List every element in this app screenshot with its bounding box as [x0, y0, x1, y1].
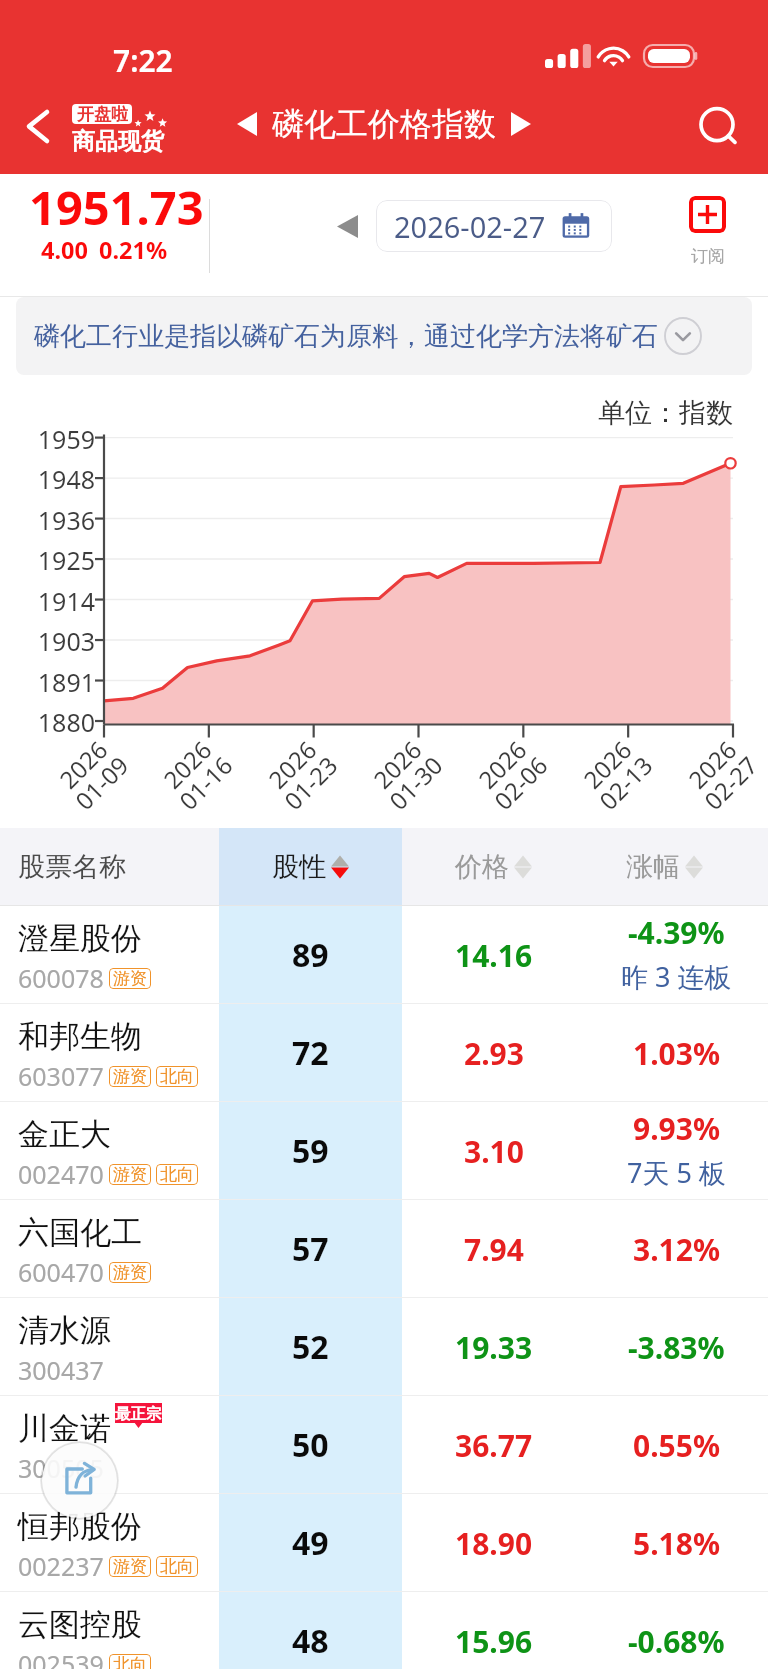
staticText: 北向 — [160, 1066, 194, 1087]
button[interactable]: 恒邦股份 — [0, 1494, 768, 1592]
staticText: 涨幅 — [626, 850, 680, 884]
staticText: 5.18% — [633, 1523, 720, 1564]
staticText: 川金诺 — [18, 1409, 111, 1448]
staticText: 单位：指数 — [598, 396, 733, 430]
staticText: 18.90 — [455, 1523, 533, 1564]
staticText: 订阅 — [691, 246, 725, 267]
button[interactable]: 川金诺 — [0, 1396, 768, 1494]
staticText: 2026 01-09 — [49, 730, 135, 817]
staticText: 2026-02-27 — [394, 207, 546, 246]
button[interactable]: 金正大 — [0, 1102, 768, 1200]
staticText: 2026 02-13 — [573, 730, 659, 817]
staticText: 1.03% — [633, 1033, 720, 1074]
staticText: 2026 01-30 — [363, 730, 449, 817]
staticText: 游资 — [113, 1556, 147, 1577]
staticText: 0.55% — [633, 1425, 720, 1466]
staticText: 57 — [292, 1227, 329, 1271]
button[interactable]: Previous day — [337, 215, 358, 238]
staticText: 002237 — [18, 1549, 104, 1583]
staticText: 最正宗 — [115, 1404, 162, 1424]
staticText: 北向 — [160, 1556, 194, 1577]
button[interactable]: 磷化工行业是指以磷矿石为原料，通过化学方法将矿石 — [16, 297, 752, 375]
staticText: 0.21% — [99, 234, 168, 266]
staticText: 1951.73 — [29, 175, 204, 239]
staticText: 7:22 — [113, 40, 173, 81]
staticText: 金正大 — [18, 1115, 111, 1154]
staticText: 北向 — [160, 1164, 194, 1185]
staticText: 和邦生物 — [18, 1017, 142, 1056]
staticText: 14.16 — [455, 935, 533, 976]
button[interactable]: Back — [6, 96, 64, 158]
staticText: 89 — [292, 933, 329, 977]
staticText: 商品现货 — [72, 127, 164, 156]
staticText: 4.00 — [41, 234, 88, 266]
staticText: 1903 — [37, 624, 95, 658]
staticText: -3.83% — [628, 1327, 725, 1368]
staticText: 7天 5 板 — [627, 1154, 726, 1191]
staticText: 游资 — [113, 1262, 147, 1283]
staticText: 1948 — [37, 462, 95, 496]
staticText: 恒邦股份 — [18, 1507, 142, 1546]
staticText: 股票名称 — [18, 850, 126, 884]
staticText: 19.33 — [455, 1327, 533, 1368]
button[interactable]: Search — [689, 97, 747, 155]
staticText: 1925 — [37, 543, 95, 577]
staticText: 磷化工行业是指以磷矿石为原料，通过化学方法将矿石 — [34, 320, 658, 353]
staticText: 72 — [292, 1031, 329, 1075]
staticText: 002470 — [18, 1157, 104, 1191]
staticText: 1936 — [37, 503, 95, 537]
staticText: 1891 — [37, 665, 95, 699]
staticText: 2026 01-23 — [258, 730, 344, 817]
staticText: 600078 — [18, 961, 104, 995]
staticText: 300437 — [18, 1353, 104, 1387]
staticText: 北向 — [113, 1654, 147, 1669]
staticText: -4.39% — [628, 912, 725, 953]
staticText: 游资 — [113, 968, 147, 989]
staticText: 48 — [292, 1619, 329, 1663]
button[interactable]: 六国化工 — [0, 1200, 768, 1298]
staticText: 3.12% — [633, 1229, 720, 1270]
staticText: 2.93 — [464, 1033, 524, 1074]
staticText: 7.94 — [464, 1229, 524, 1270]
staticText: 开盘啦 — [77, 104, 128, 124]
staticText: 52 — [292, 1325, 329, 1369]
staticText: 价格 — [455, 850, 509, 884]
staticText: 49 — [292, 1521, 329, 1565]
button[interactable]: 磷化工价格指数 — [0, 104, 768, 144]
staticText: 2026 02-06 — [468, 730, 554, 817]
staticText: 2026 02-27 — [678, 730, 764, 817]
staticText: 59 — [292, 1129, 329, 1173]
button[interactable]: 清水源 — [0, 1298, 768, 1396]
staticText: 2026 01-16 — [153, 730, 239, 817]
button[interactable]: 2026-02-27 — [376, 200, 612, 252]
staticText: 9.93% — [633, 1108, 720, 1149]
staticText: 600470 — [18, 1255, 104, 1289]
staticText: 1914 — [37, 584, 95, 618]
staticText: 磷化工价格指数 — [272, 104, 496, 144]
button[interactable]: Share — [40, 1441, 119, 1520]
button[interactable]: 和邦生物 — [0, 1004, 768, 1102]
staticText: 36.77 — [455, 1425, 533, 1466]
button[interactable]: 云图控股 — [0, 1592, 768, 1669]
staticText: 3.10 — [464, 1131, 524, 1172]
staticText: 603077 — [18, 1059, 104, 1093]
staticText: 昨 3 连板 — [621, 958, 732, 995]
staticText: 300505 — [18, 1451, 104, 1485]
staticText: 游资 — [113, 1164, 147, 1185]
staticText: 002539 — [18, 1647, 104, 1669]
staticText: 15.96 — [455, 1621, 533, 1662]
staticText: 1959 — [37, 422, 95, 456]
staticText: 50 — [292, 1423, 329, 1467]
staticText: 1880 — [37, 705, 95, 739]
staticText: 清水源 — [18, 1311, 111, 1350]
staticText: 云图控股 — [18, 1605, 142, 1644]
staticText: 股性 — [272, 850, 326, 884]
staticText: -0.68% — [628, 1621, 725, 1662]
staticText: 六国化工 — [18, 1213, 142, 1252]
staticText: 游资 — [113, 1066, 147, 1087]
staticText: 澄星股份 — [18, 919, 142, 958]
button[interactable]: 订阅 — [680, 192, 736, 272]
button[interactable]: 澄星股份 — [0, 906, 768, 1004]
